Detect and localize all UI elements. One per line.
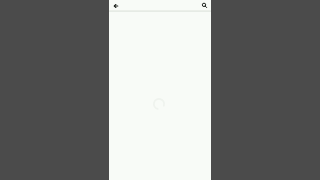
button[interactable]: Navigate up <box>109 0 120 12</box>
button[interactable]: Search <box>200 0 211 12</box>
